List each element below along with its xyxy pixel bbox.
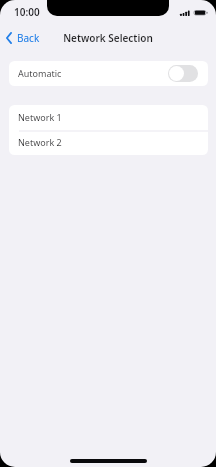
button[interactable]: Automatic network selection toggle [168,65,198,82]
button[interactable]: Network 2 [9,130,208,155]
button[interactable]: Automatic [9,61,208,86]
staticText: Automatic [18,67,62,79]
staticText: Back [17,31,40,45]
button[interactable]: Network 1 [9,105,208,130]
staticText: Network Selection [0,31,216,45]
staticText: Network 1 [18,111,62,123]
staticText: 10:00 [14,5,40,19]
staticText: Network 2 [18,136,62,148]
button[interactable]: Back [3,30,44,46]
